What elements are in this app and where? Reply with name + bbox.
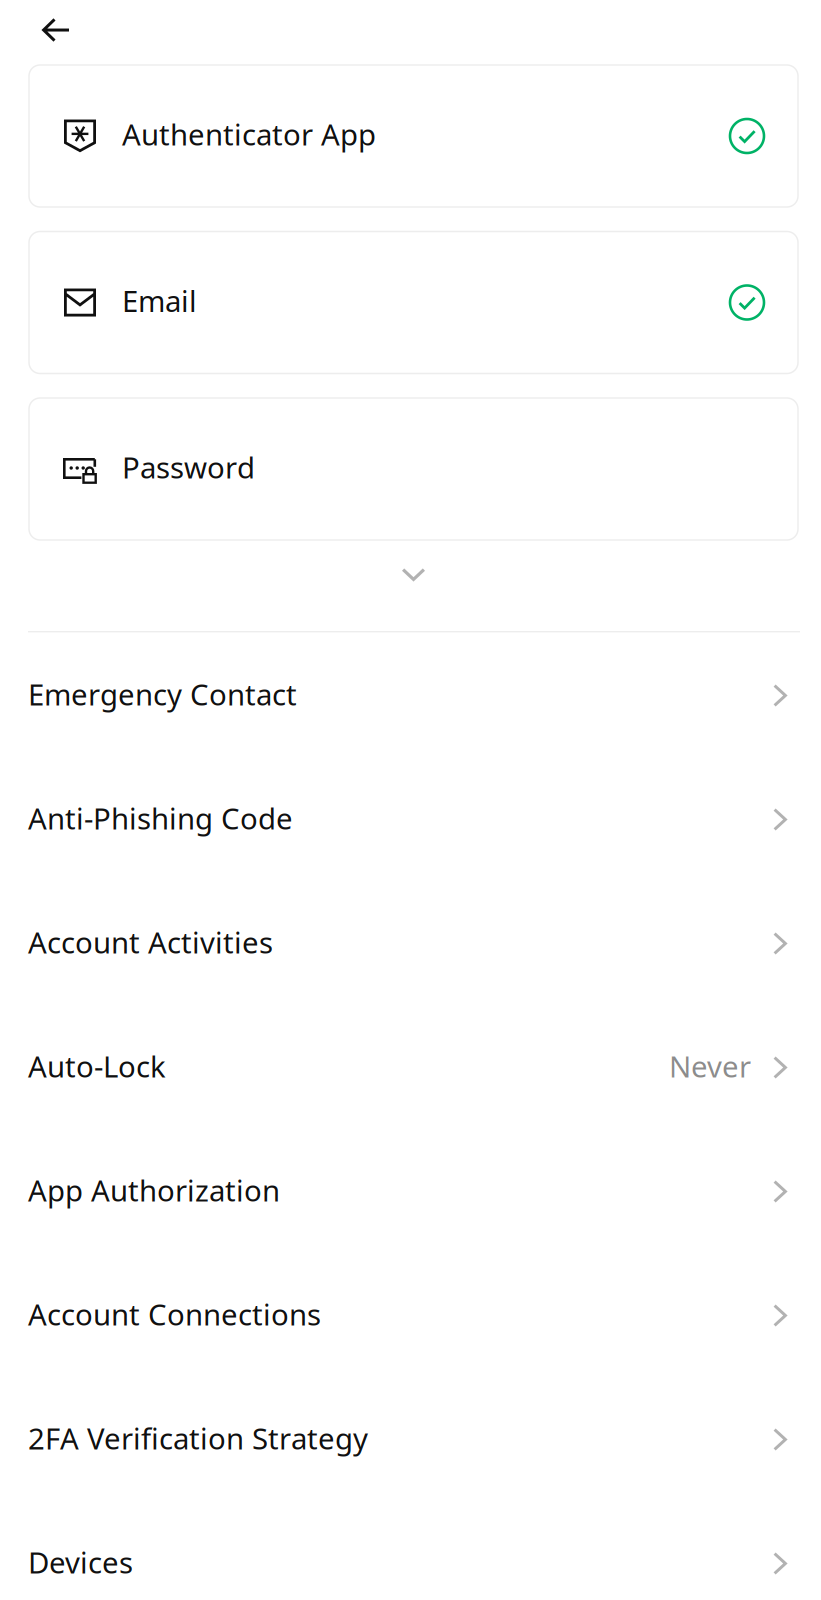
button[interactable]: Authenticator App (29, 65, 798, 207)
button[interactable]: Show more methods (353, 547, 473, 603)
button[interactable]: Devices (0, 1500, 821, 1600)
button[interactable]: Email (29, 231, 798, 373)
button[interactable]: App Authorization (0, 1128, 821, 1252)
staticText: Devices (28, 1542, 133, 1581)
button[interactable]: Back (26, 2, 86, 58)
staticText: Anti-Phishing Code (28, 798, 293, 837)
staticText: Authenticator App (122, 114, 376, 153)
button[interactable]: Account Connections (0, 1252, 821, 1376)
staticText: App Authorization (28, 1170, 280, 1209)
button[interactable]: Emergency Contact (0, 632, 821, 756)
staticText: Auto-Lock (28, 1046, 166, 1085)
staticText: 2FA Verification Strategy (28, 1418, 368, 1457)
staticText: Password (122, 447, 255, 486)
button[interactable]: Anti-Phishing Code (0, 756, 821, 880)
staticText: Email (122, 281, 197, 320)
staticText: Emergency Contact (28, 674, 297, 713)
button[interactable]: Account Activities (0, 880, 821, 1004)
button[interactable]: Password (29, 398, 798, 540)
staticText: Never (669, 1046, 751, 1085)
staticText: Account Connections (28, 1294, 321, 1333)
button[interactable]: 2FA Verification Strategy (0, 1376, 821, 1500)
staticText: Account Activities (28, 922, 273, 961)
button[interactable]: Auto-Lock (0, 1004, 821, 1128)
